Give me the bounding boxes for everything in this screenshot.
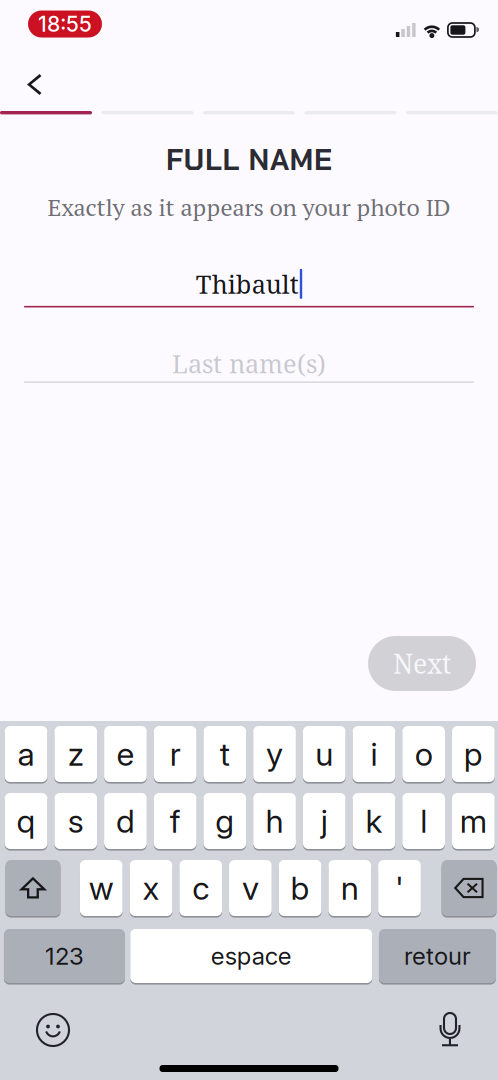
button[interactable]: r <box>154 726 196 782</box>
staticText: 123 <box>45 941 84 970</box>
button[interactable]: g <box>203 793 246 849</box>
staticText: t <box>220 735 230 773</box>
staticText: y <box>266 735 283 773</box>
staticText: i <box>370 735 377 773</box>
button[interactable]: c <box>179 860 222 916</box>
button[interactable]: x <box>130 860 172 916</box>
staticText: b <box>291 869 310 907</box>
staticText: k <box>365 802 382 840</box>
staticText: s <box>68 802 84 840</box>
staticText: q <box>17 802 36 840</box>
staticText: h <box>266 802 284 840</box>
staticText: retour <box>404 941 471 970</box>
button[interactable]: v <box>229 860 272 916</box>
staticText: Thibault <box>196 267 299 301</box>
button[interactable]: Next <box>368 636 476 691</box>
staticText: u <box>315 735 333 773</box>
button[interactable]: Back <box>0 52 61 111</box>
staticText: z <box>68 735 84 773</box>
button[interactable]: 123 <box>4 929 125 983</box>
button[interactable]: j <box>303 793 346 849</box>
staticText: 18:55 <box>38 11 92 37</box>
staticText: Exactly as it appears on your photo ID <box>47 191 450 223</box>
button[interactable]: ' <box>378 860 421 916</box>
button[interactable]: h <box>253 793 296 849</box>
staticText: FULL NAME <box>166 140 332 179</box>
staticText: Last name(s) <box>172 346 326 381</box>
button[interactable]: l <box>402 793 445 849</box>
button[interactable]: a <box>5 726 47 782</box>
staticText: a <box>18 735 35 773</box>
button[interactable]: p <box>452 726 495 782</box>
staticText: f <box>170 802 181 840</box>
button[interactable]: d <box>104 793 147 849</box>
button[interactable]: Dictate <box>425 1012 475 1048</box>
staticText: c <box>192 869 209 907</box>
button[interactable]: i <box>353 726 395 782</box>
button[interactable]: e <box>104 726 147 782</box>
staticText: p <box>464 735 483 773</box>
button[interactable]: Shift <box>5 860 60 916</box>
button[interactable]: y <box>253 726 296 782</box>
button[interactable]: Emoji <box>28 1012 78 1048</box>
button[interactable]: m <box>452 793 495 849</box>
staticText: Next <box>393 645 451 682</box>
staticText: w <box>89 869 114 907</box>
staticText: x <box>142 869 159 907</box>
staticText: v <box>242 869 259 907</box>
button[interactable]: f <box>154 793 196 849</box>
button[interactable]: o <box>402 726 445 782</box>
button[interactable]: Delete <box>441 860 496 916</box>
staticText: l <box>420 802 427 840</box>
staticText: m <box>460 802 487 840</box>
button[interactable]: u <box>303 726 346 782</box>
staticText: ' <box>395 869 404 907</box>
button[interactable]: n <box>328 860 371 916</box>
staticText: espace <box>211 941 292 970</box>
staticText: e <box>116 735 134 773</box>
button[interactable]: w <box>80 860 123 916</box>
staticText: r <box>170 735 181 773</box>
button[interactable]: s <box>54 793 97 849</box>
staticText: n <box>341 869 359 907</box>
staticText: j <box>321 802 328 840</box>
staticText: g <box>215 802 234 840</box>
button[interactable]: k <box>353 793 395 849</box>
staticText: d <box>116 802 135 840</box>
button[interactable]: t <box>203 726 246 782</box>
button[interactable]: retour <box>379 929 496 983</box>
staticText: o <box>415 735 433 773</box>
button[interactable]: espace <box>130 929 372 983</box>
button[interactable]: q <box>5 793 47 849</box>
button[interactable]: z <box>54 726 97 782</box>
button[interactable]: b <box>279 860 321 916</box>
